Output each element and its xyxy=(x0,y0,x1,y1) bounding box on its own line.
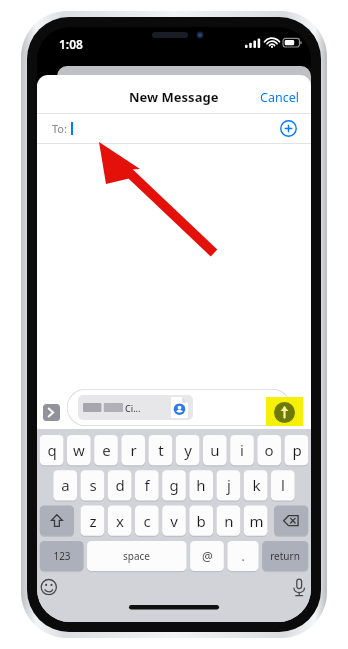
staticText: Cancel xyxy=(260,89,299,106)
staticText: c xyxy=(143,511,151,531)
staticText: s xyxy=(89,475,97,495)
button[interactable]: s xyxy=(81,470,105,500)
staticText: k xyxy=(252,475,261,495)
button[interactable]: a xyxy=(53,470,77,500)
staticText: space xyxy=(123,549,150,563)
button[interactable]: Show more apps xyxy=(43,404,60,421)
staticText: w xyxy=(73,440,85,460)
button[interactable]: x xyxy=(108,506,132,536)
button[interactable]: c xyxy=(135,506,159,536)
button[interactable]: Emoji xyxy=(39,579,59,599)
button[interactable]: k xyxy=(244,470,268,500)
button[interactable]: Shift xyxy=(40,506,74,536)
button[interactable]: return xyxy=(262,541,308,571)
staticText: @ xyxy=(202,548,213,564)
button[interactable]: u xyxy=(203,435,227,465)
button[interactable]: Backspace xyxy=(274,506,308,536)
staticText: To: xyxy=(52,121,67,136)
button[interactable]: r xyxy=(121,435,145,465)
staticText: m xyxy=(249,511,264,531)
button[interactable]: Dictation xyxy=(289,579,309,599)
button[interactable]: j xyxy=(217,470,241,500)
staticText: l xyxy=(281,475,285,495)
staticText: o xyxy=(264,440,274,460)
button[interactable]: To: xyxy=(37,114,311,143)
button[interactable]: y xyxy=(176,435,200,465)
button[interactable]: g xyxy=(162,470,186,500)
staticText: v xyxy=(170,511,178,531)
staticText: g xyxy=(169,475,179,495)
button[interactable]: t xyxy=(149,435,173,465)
button[interactable]: b xyxy=(189,506,213,536)
button[interactable]: Cancel xyxy=(248,83,311,112)
staticText: i xyxy=(240,440,244,460)
button[interactable]: space xyxy=(87,541,186,571)
button[interactable]: h xyxy=(189,470,213,500)
staticText: h xyxy=(196,475,206,495)
staticText: 123 xyxy=(53,549,71,563)
button[interactable]: q xyxy=(40,435,64,465)
staticText: q xyxy=(47,440,57,460)
staticText: u xyxy=(210,440,220,460)
staticText: x xyxy=(116,511,124,531)
button[interactable]: Add contact xyxy=(280,120,297,137)
staticText: . xyxy=(241,548,245,564)
button[interactable]: e xyxy=(94,435,118,465)
button[interactable]: p xyxy=(285,435,309,465)
staticText: d xyxy=(115,475,125,495)
staticText: j xyxy=(227,475,231,495)
staticText: e xyxy=(102,440,111,460)
button[interactable]: z xyxy=(81,506,105,536)
button[interactable]: d xyxy=(108,470,132,500)
staticText: New Message xyxy=(129,88,219,106)
staticText: a xyxy=(61,475,70,495)
staticText: r xyxy=(130,440,137,460)
button[interactable]: @ xyxy=(190,541,224,571)
button[interactable]: n xyxy=(217,506,241,536)
button[interactable]: f xyxy=(135,470,159,500)
button[interactable]: m xyxy=(244,506,268,536)
staticText: n xyxy=(224,511,234,531)
button[interactable]: o xyxy=(257,435,281,465)
staticText: z xyxy=(89,511,97,531)
staticText: b xyxy=(196,511,206,531)
button[interactable]: . xyxy=(227,541,258,571)
staticText: p xyxy=(292,440,302,460)
button[interactable]: w xyxy=(67,435,91,465)
staticText: t xyxy=(158,440,164,460)
staticText: y xyxy=(184,440,192,460)
button[interactable]: Ci... xyxy=(67,389,291,426)
button[interactable]: v xyxy=(162,506,186,536)
staticText: return xyxy=(270,549,300,563)
staticText: 1:08 xyxy=(59,36,83,52)
button[interactable]: i xyxy=(230,435,254,465)
button[interactable]: l xyxy=(271,470,295,500)
staticText: Ci... xyxy=(125,402,141,414)
button[interactable]: 123 xyxy=(40,541,84,571)
button[interactable]: Send xyxy=(274,402,295,423)
staticText: f xyxy=(144,475,150,495)
